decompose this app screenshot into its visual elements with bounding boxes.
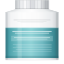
button[interactable]: Skincare bottle product photo <box>0 0 64 64</box>
